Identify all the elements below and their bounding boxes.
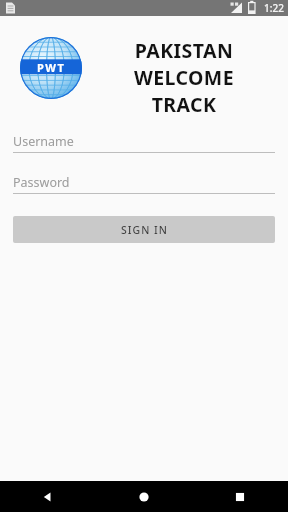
staticText: PWT xyxy=(37,60,66,75)
staticText: SIGN IN xyxy=(121,223,168,237)
staticText: Password xyxy=(13,174,70,191)
button[interactable]: Username xyxy=(13,133,275,153)
button[interactable]: Home xyxy=(96,481,192,512)
button[interactable]: Recent apps xyxy=(192,481,288,512)
button[interactable]: Password xyxy=(13,174,275,194)
staticText: Username xyxy=(13,133,74,150)
staticText: 1:22 xyxy=(264,1,284,15)
staticText: PAKISTAN WELCOME TRACK xyxy=(88,37,280,118)
button[interactable]: SIGN IN xyxy=(13,216,275,243)
button[interactable]: Back xyxy=(0,481,96,512)
other: PWT logo xyxy=(20,37,82,99)
